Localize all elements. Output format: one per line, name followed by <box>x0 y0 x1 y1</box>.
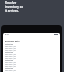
staticText: Item value 1,240 <box>5 46 16 48</box>
staticText: Item value 1,240 <box>5 56 16 58</box>
staticText: Item value 1,240 <box>5 54 16 56</box>
staticText: Item value 1,240 <box>5 66 16 68</box>
staticText: Resolve inventory so it arrives. <box>5 1 24 13</box>
staticText: 9:41 <box>5 33 9 36</box>
staticText: Item value 1,240 <box>5 62 16 64</box>
staticText: Item value 1,240 <box>5 64 16 66</box>
staticText: Item value 1,240 <box>5 70 16 72</box>
staticText: Unit details <box>5 60 14 62</box>
staticText: Unit details <box>5 68 14 70</box>
staticText: Unit details <box>5 52 14 54</box>
staticText: Item value 1,240 <box>5 50 16 52</box>
staticText: Item value 1,240 <box>5 48 16 50</box>
staticText: Unit details <box>5 44 14 46</box>
staticText: Item value 1,240 <box>5 58 16 60</box>
staticText: Business data <box>5 40 20 43</box>
